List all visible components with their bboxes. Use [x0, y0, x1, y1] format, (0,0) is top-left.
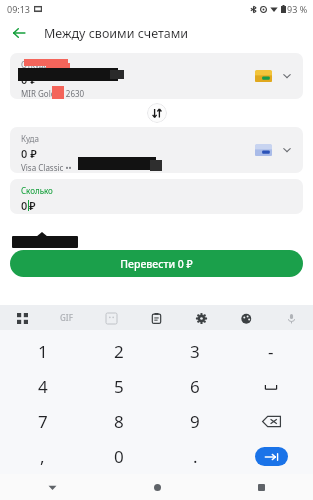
staticText: 7: [38, 410, 48, 433]
staticText: 09:13: [7, 3, 31, 15]
button[interactable]: Откуда: [10, 53, 303, 99]
button[interactable]: Back: [0, 474, 105, 500]
button[interactable]: Сколько: [10, 179, 303, 214]
button[interactable]: Clipboard: [145, 307, 167, 329]
staticText: GIF: [60, 312, 73, 323]
button[interactable]: 5: [81, 369, 157, 404]
button[interactable]: Minus: [233, 334, 309, 369]
staticText: Visa Classic ••: [21, 162, 72, 173]
staticText: 0 ₽: [21, 146, 37, 161]
button[interactable]: Themes: [235, 307, 257, 329]
button[interactable]: Space: [233, 369, 309, 404]
button[interactable]: Expand: [279, 68, 295, 84]
staticText: Между своими счетами: [44, 25, 189, 42]
staticText: 5: [114, 375, 124, 398]
button[interactable]: Next: [233, 439, 309, 474]
button[interactable]: 2: [81, 334, 157, 369]
staticText: ₽: [29, 198, 36, 213]
staticText: 0: [114, 445, 124, 468]
button[interactable]: GIF: [60, 312, 73, 323]
button[interactable]: Recent apps: [209, 474, 313, 500]
staticText: MIR Gold •• 2630: [21, 88, 85, 99]
staticText: 4: [38, 375, 48, 398]
staticText: 9: [190, 410, 200, 433]
staticText: ,: [40, 445, 45, 468]
button[interactable]: Expand: [279, 142, 295, 158]
button[interactable]: Settings: [190, 307, 212, 329]
button[interactable]: 6: [157, 369, 233, 404]
button[interactable]: 8: [81, 404, 157, 439]
button[interactable]: 3: [157, 334, 233, 369]
staticText: Перевести 0 ₽: [120, 257, 193, 271]
other: Backspace: [262, 415, 281, 428]
button[interactable]: Swap accounts: [147, 103, 167, 123]
staticText: 2: [114, 340, 124, 363]
button[interactable]: 9: [157, 404, 233, 439]
staticText: .: [193, 445, 198, 468]
button[interactable]: 4: [4, 369, 81, 404]
staticText: 8: [114, 410, 124, 433]
staticText: 6: [190, 375, 200, 398]
button[interactable]: Voice input: [280, 307, 302, 329]
staticText: 3: [190, 340, 200, 363]
staticText: Куда: [21, 133, 39, 144]
other: Next: [255, 447, 288, 466]
button[interactable]: .: [157, 439, 233, 474]
staticText: 93 %: [287, 3, 308, 15]
staticText: 0 ₽: [21, 72, 37, 87]
button[interactable]: 0: [81, 439, 157, 474]
button[interactable]: Перевести 0 ₽: [10, 250, 303, 277]
button[interactable]: ,: [4, 439, 81, 474]
staticText: 1: [38, 340, 48, 363]
button[interactable]: Keyboard apps: [11, 307, 33, 329]
button[interactable]: Stickers: [100, 307, 122, 329]
button[interactable]: Backspace: [233, 404, 309, 439]
staticText: Сколько: [21, 185, 53, 196]
button[interactable]: Куда: [10, 127, 303, 173]
staticText: -: [268, 340, 274, 363]
other: Space: [264, 382, 278, 392]
staticText: 0: [21, 198, 28, 213]
other: Minus: [268, 340, 274, 363]
button[interactable]: Home: [105, 474, 209, 500]
button[interactable]: Back: [4, 18, 34, 48]
staticText: Откуда: [21, 59, 49, 70]
button[interactable]: 1: [4, 334, 81, 369]
button[interactable]: 7: [4, 404, 81, 439]
